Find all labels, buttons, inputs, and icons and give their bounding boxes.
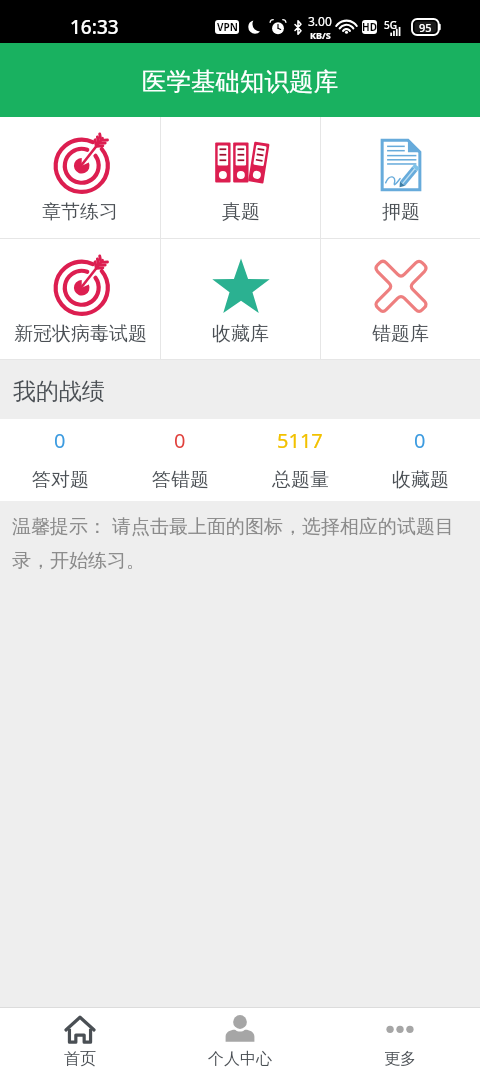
staticText: 温馨提示： 请点击最上面的图标，选择相应的试题目录，开始练习。 (12, 513, 466, 573)
staticText: 我的战绩 (13, 377, 105, 406)
button[interactable]: 0 (0, 419, 120, 501)
button[interactable]: 错题库 (321, 239, 480, 359)
button[interactable]: 收藏库 (161, 239, 320, 359)
staticText: 押题 (382, 200, 420, 224)
staticText: 16:33 (70, 14, 119, 40)
staticText: 个人中心 (208, 1049, 272, 1069)
staticText: KB/S (310, 29, 331, 41)
staticText: 3.00 (308, 13, 332, 29)
staticText: 5117 (277, 427, 323, 454)
staticText: 答错题 (152, 468, 209, 492)
button[interactable]: 新冠状病毒试题 (0, 239, 160, 359)
staticText: 错题库 (372, 322, 429, 346)
button[interactable]: 真题 (161, 117, 320, 238)
staticText: 总题量 (272, 468, 329, 492)
button[interactable]: 个人中心 (160, 1008, 320, 1072)
button[interactable]: 首页 (0, 1008, 160, 1072)
staticText: HD (362, 20, 377, 34)
staticText: VPN (217, 20, 238, 34)
staticText: 首页 (64, 1049, 96, 1069)
button[interactable]: 0 (360, 419, 480, 501)
button[interactable]: 0 (120, 419, 240, 501)
staticText: 0 (54, 427, 66, 454)
button[interactable]: 押题 (321, 117, 480, 238)
staticText: 医学基础知识题库 (142, 66, 338, 97)
staticText: 0 (414, 427, 426, 454)
staticText: 新冠状病毒试题 (14, 322, 147, 346)
staticText: 5G (384, 18, 397, 32)
staticText: 95 (419, 20, 432, 35)
staticText: 收藏库 (212, 322, 269, 346)
staticText: 更多 (384, 1049, 416, 1069)
staticText: 真题 (222, 200, 260, 224)
button[interactable]: 更多 (320, 1008, 480, 1072)
staticText: 收藏题 (392, 468, 449, 492)
staticText: 章节练习 (42, 200, 118, 224)
staticText: 0 (174, 427, 186, 454)
button[interactable]: 章节练习 (0, 117, 160, 238)
staticText: 答对题 (32, 468, 89, 492)
button[interactable]: 5117 (240, 419, 360, 501)
